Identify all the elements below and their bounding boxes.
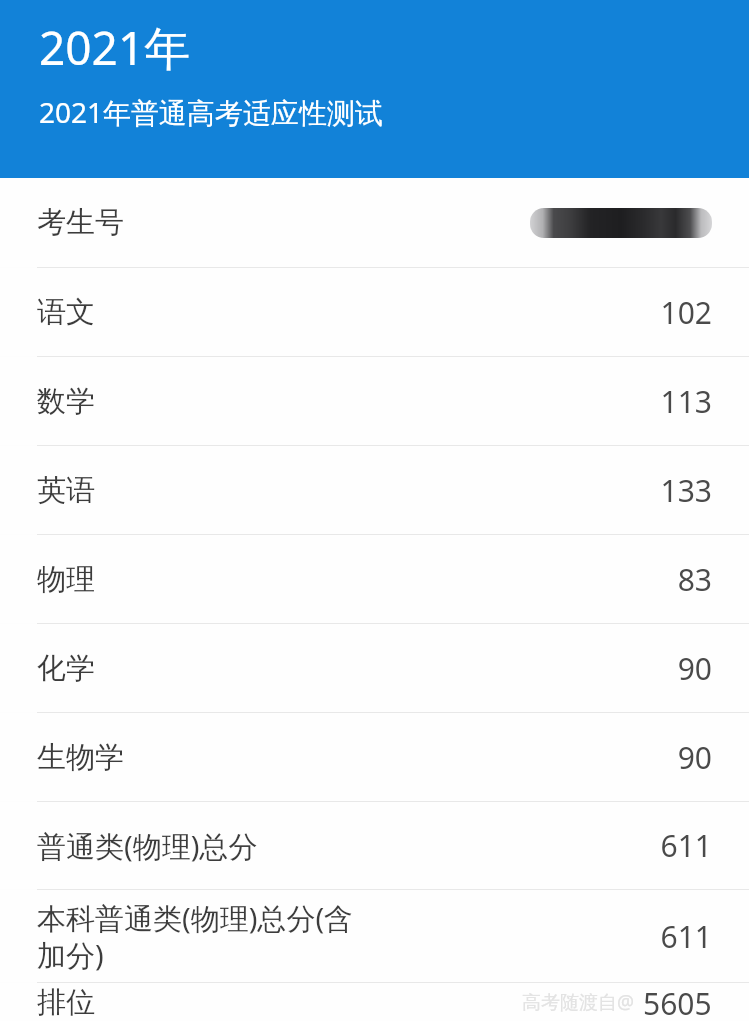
button[interactable]: 本科普通类(物理)总分(含 加分) bbox=[0, 890, 749, 982]
staticText: 2021年普通高考适应性测试 bbox=[39, 93, 384, 131]
button[interactable]: 生物学 bbox=[0, 713, 749, 801]
button[interactable]: 排位 bbox=[0, 983, 749, 1021]
staticText: 普通类(物理)总分 bbox=[37, 826, 648, 866]
button[interactable]: 考生号 bbox=[0, 178, 749, 267]
staticText: 英语 bbox=[37, 472, 648, 509]
button[interactable]: 普通类(物理)总分 bbox=[0, 802, 749, 889]
staticText: 2021年 bbox=[39, 16, 191, 79]
staticText: 本科普通类(物理)总分(含 加分) bbox=[37, 898, 648, 975]
staticText: 90 bbox=[677, 648, 712, 689]
staticText: 生物学 bbox=[37, 739, 665, 776]
staticText: 语文 bbox=[37, 294, 648, 331]
button[interactable]: 英语 bbox=[0, 446, 749, 534]
button[interactable]: 物理 bbox=[0, 535, 749, 623]
staticText: 83 bbox=[677, 559, 712, 600]
staticText: 90 bbox=[677, 737, 712, 778]
button[interactable]: 语文 bbox=[0, 268, 749, 356]
staticText: 排位 bbox=[37, 984, 522, 1021]
button[interactable]: 化学 bbox=[0, 624, 749, 712]
staticText: 102 bbox=[660, 292, 712, 333]
staticText: 5605 bbox=[643, 983, 712, 1021]
staticText: 113 bbox=[660, 381, 712, 422]
staticText: 611 bbox=[660, 916, 712, 957]
button[interactable]: 数学 bbox=[0, 357, 749, 445]
staticText: 物理 bbox=[37, 561, 665, 598]
staticText: 高考随渡自@ bbox=[522, 989, 635, 1015]
staticText: 数学 bbox=[37, 383, 648, 420]
staticText: 611 bbox=[660, 825, 712, 866]
staticText: 化学 bbox=[37, 650, 665, 687]
staticText: 133 bbox=[660, 470, 712, 511]
staticText: 考生号 bbox=[37, 204, 530, 241]
other: Hidden candidate number bbox=[530, 208, 712, 238]
